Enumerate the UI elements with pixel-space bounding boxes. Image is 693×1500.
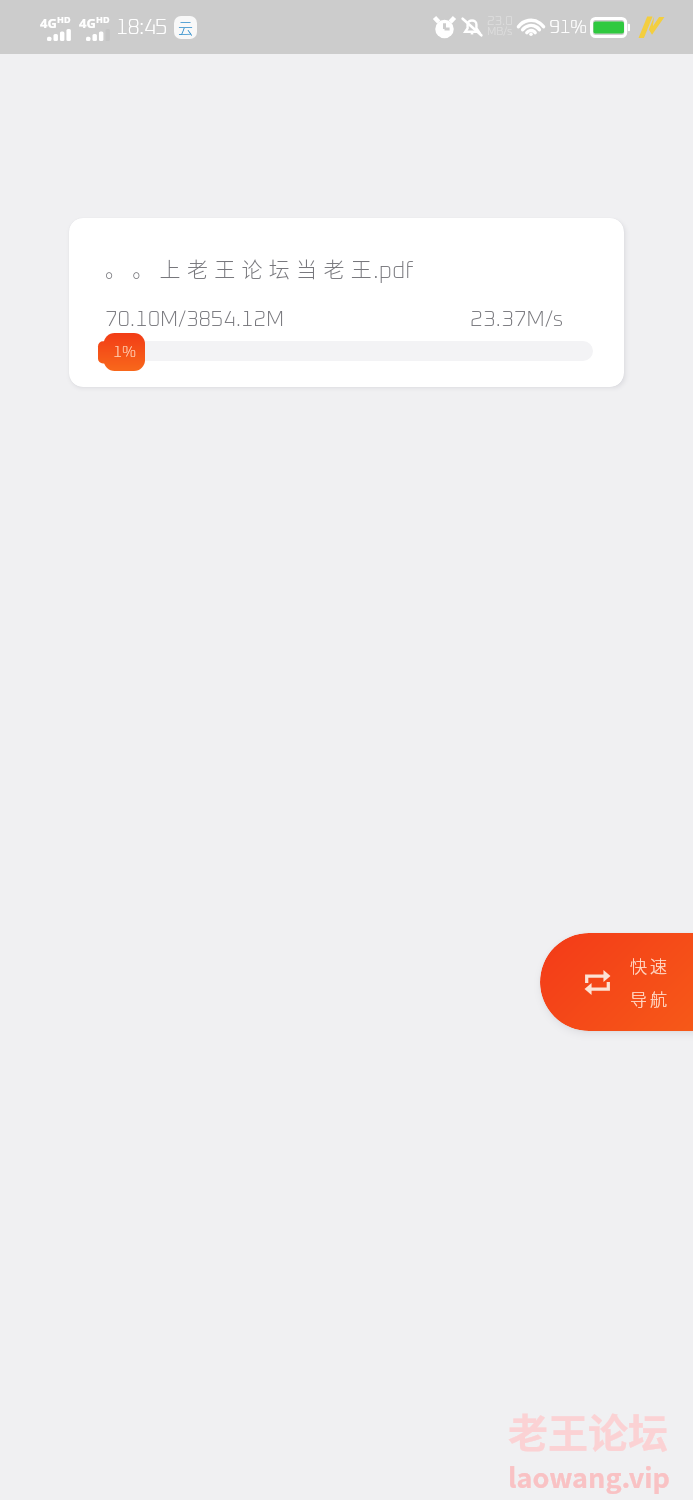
staticText: 23.0	[487, 15, 513, 28]
staticText: MB/s	[487, 26, 513, 37]
staticText: 23.37M/s	[470, 309, 564, 331]
staticText: 18:45	[116, 17, 167, 38]
staticText: HD	[57, 13, 71, 25]
staticText: .pdf	[373, 260, 414, 283]
staticText: laowang.vip	[508, 1457, 670, 1496]
staticText: 70.10M/3854.12M	[105, 309, 285, 331]
button[interactable]: 快速导航 Quick navigation	[540, 933, 693, 1031]
staticText: 4G	[40, 14, 57, 32]
staticText: 云	[178, 17, 194, 39]
staticText: 导航	[630, 986, 670, 1011]
staticText: 4G	[79, 14, 96, 32]
staticText: 老王论坛	[508, 1402, 668, 1460]
button[interactable]: 。。上老王论坛当老王	[69, 218, 624, 387]
other: Quick navigation	[584, 970, 611, 995]
staticText: 快速	[630, 953, 670, 978]
staticText: 91%	[549, 18, 587, 37]
staticText: HD	[96, 13, 110, 25]
staticText: 。。上老王论坛当老王	[105, 253, 378, 283]
staticText: 1%	[113, 344, 136, 360]
